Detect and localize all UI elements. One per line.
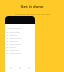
button[interactable]: Profile: [26, 65, 32, 71]
button[interactable]: [5, 40, 35, 43]
button[interactable]: [5, 49, 35, 52]
button[interactable]: [5, 52, 35, 55]
button[interactable]: [5, 16, 35, 24]
button[interactable]: [5, 46, 35, 49]
button[interactable]: Search: [17, 65, 23, 71]
button[interactable]: [5, 31, 35, 34]
staticText: Get it done: [20, 4, 44, 10]
button[interactable]: [5, 37, 35, 40]
button[interactable]: Home: [8, 65, 14, 71]
staticText: Today's tasks: [7, 26, 22, 29]
button[interactable]: [5, 43, 35, 46]
staticText: Plan your day and stay focused: [15, 12, 50, 15]
button[interactable]: [5, 34, 35, 37]
